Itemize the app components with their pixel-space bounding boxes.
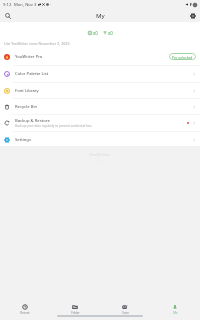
staticText: Settings <box>15 137 31 143</box>
staticText: Backup & Restore <box>15 118 50 124</box>
button[interactable]: Search <box>1 9 14 22</box>
staticText: Recycle Bin <box>15 104 38 110</box>
staticText: x0 <box>108 30 113 36</box>
staticText: Recent <box>20 311 30 315</box>
staticText: Color Palette List <box>15 71 49 77</box>
staticText: Back up your data regularly to prevent a… <box>15 124 92 128</box>
button[interactable]: YouWriter Pro <box>0 48 200 65</box>
button[interactable]: Folder <box>50 303 100 320</box>
staticText: Font Library <box>15 88 39 94</box>
button[interactable]: Recent <box>0 303 50 320</box>
staticText: Folder <box>71 311 80 315</box>
staticText: My <box>96 12 105 20</box>
button[interactable]: Recycle Bin <box>0 99 200 114</box>
button[interactable]: Me <box>150 303 200 320</box>
staticText: Mon, Nov 3 <box>14 2 37 8</box>
staticText: Use YouWriter since November 3, 2025 <box>4 41 70 46</box>
staticText: YouWriter <box>89 152 111 158</box>
staticText: Scan <box>122 311 129 315</box>
staticText: Me <box>173 311 178 315</box>
button[interactable]: Backup & Restore <box>0 115 200 131</box>
button[interactable]: Settings <box>0 132 200 147</box>
button[interactable]: Color Palette List <box>0 66 200 82</box>
staticText: x0 <box>93 30 98 36</box>
button[interactable]: Settings <box>186 9 199 22</box>
staticText: 9:12 <box>3 2 12 8</box>
staticText: Pro unlocked <box>172 55 193 59</box>
button[interactable]: Pro unlocked <box>169 53 196 60</box>
staticText: · <box>50 2 52 8</box>
button[interactable]: Font Library <box>0 83 200 98</box>
button[interactable]: Scan <box>100 303 150 320</box>
staticText: YouWriter Pro <box>15 54 43 60</box>
